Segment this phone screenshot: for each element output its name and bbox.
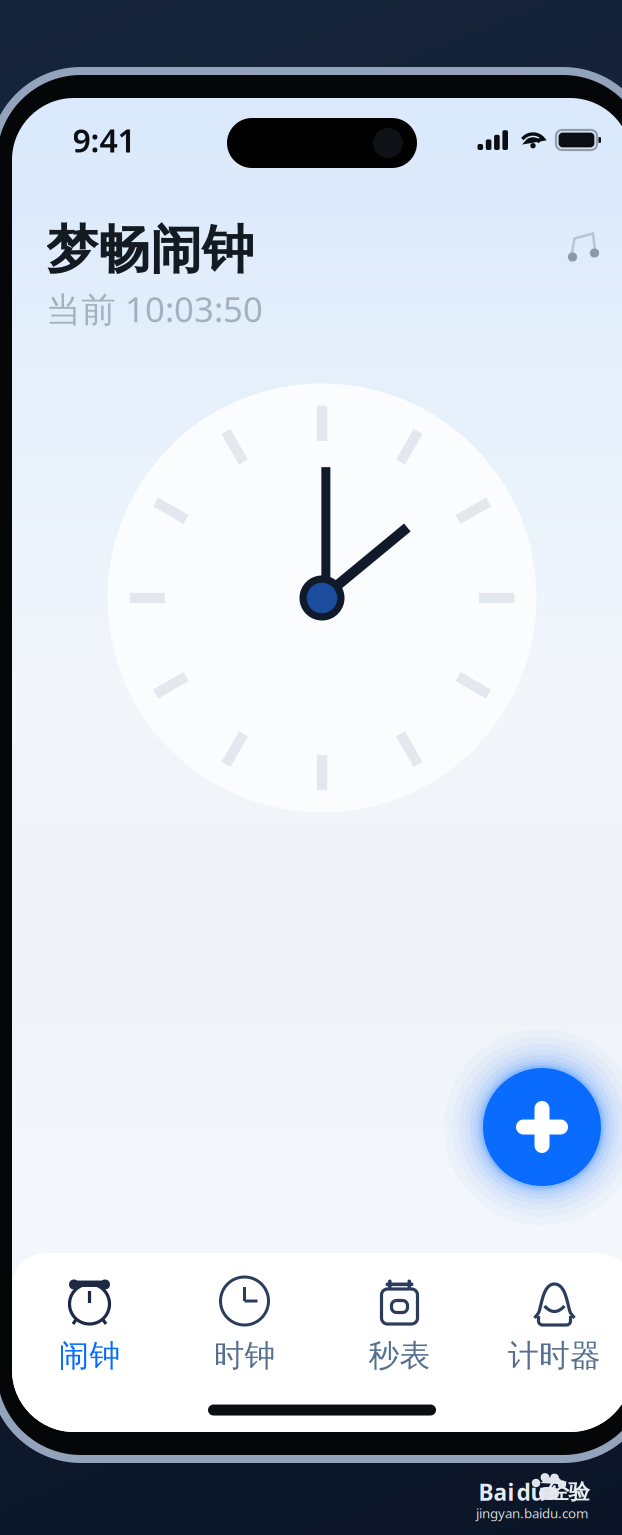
staticText: 计时器 bbox=[508, 1337, 601, 1375]
staticText: 当前 10:03:50 bbox=[46, 286, 263, 332]
staticText: 梦畅闹钟 bbox=[46, 218, 254, 282]
staticText: 9:41 bbox=[72, 119, 135, 161]
staticText: 秒表 bbox=[368, 1337, 430, 1375]
staticText: 闹钟 bbox=[58, 1337, 120, 1375]
staticText: Bai bbox=[478, 1477, 514, 1507]
button[interactable]: 计时器 bbox=[477, 1253, 622, 1432]
staticText: jingyan.baidu.com bbox=[476, 1504, 588, 1522]
button[interactable]: 时钟 bbox=[167, 1253, 322, 1432]
button[interactable]: Alarm sound bbox=[568, 218, 606, 262]
button[interactable]: 秒表 bbox=[322, 1253, 477, 1432]
button[interactable]: 闹钟 bbox=[12, 1253, 167, 1432]
staticText: 经验 bbox=[547, 1479, 589, 1505]
button[interactable]: Add alarm bbox=[444, 1029, 622, 1225]
staticText: 时钟 bbox=[213, 1337, 275, 1375]
staticText: du bbox=[516, 1477, 545, 1507]
